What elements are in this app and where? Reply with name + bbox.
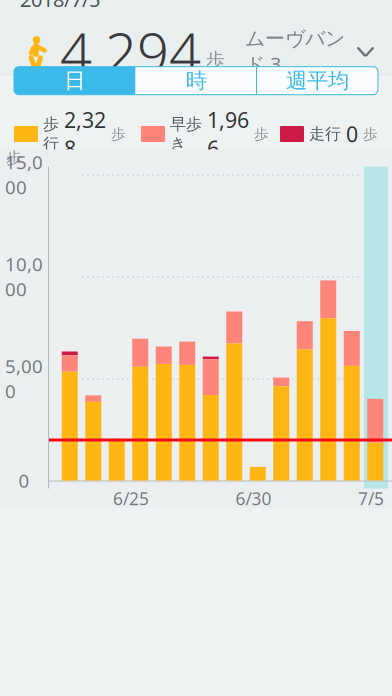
staticText: 歩 xyxy=(254,125,269,143)
staticText: 0 xyxy=(18,468,29,493)
staticText: 週平均 xyxy=(286,68,349,94)
button[interactable]: 週平均 xyxy=(257,67,378,95)
button[interactable]: 時 xyxy=(135,67,257,95)
staticText: 早歩き xyxy=(170,114,202,154)
staticText: 2,328 xyxy=(64,106,106,162)
button[interactable]: ムーヴバンド 3 xyxy=(245,16,392,87)
staticText: 歩 xyxy=(363,125,378,143)
staticText: 6/30 xyxy=(235,487,271,510)
staticText: 歩 xyxy=(206,48,225,71)
staticText: ムーヴバンド 3 xyxy=(245,26,345,77)
staticText: 2018/7/5 xyxy=(20,0,100,13)
staticText: 15,000 xyxy=(5,150,43,199)
staticText: 7/5 xyxy=(358,487,384,510)
staticText: 5,000 xyxy=(5,354,43,403)
staticText: 1,966 xyxy=(207,106,249,162)
staticText: 歩行 xyxy=(43,114,59,154)
staticText: 6/25 xyxy=(113,487,149,510)
staticText: 4,294 xyxy=(60,15,201,89)
staticText: 歩 xyxy=(111,125,126,143)
staticText: 0 xyxy=(346,120,358,148)
staticText: 日 xyxy=(64,68,85,94)
button[interactable]: 日 xyxy=(14,67,135,95)
staticText: 時 xyxy=(186,68,207,94)
staticText: 10,000 xyxy=(5,252,43,301)
staticText: 走行 xyxy=(309,124,341,144)
staticText: 歩 xyxy=(6,148,22,168)
